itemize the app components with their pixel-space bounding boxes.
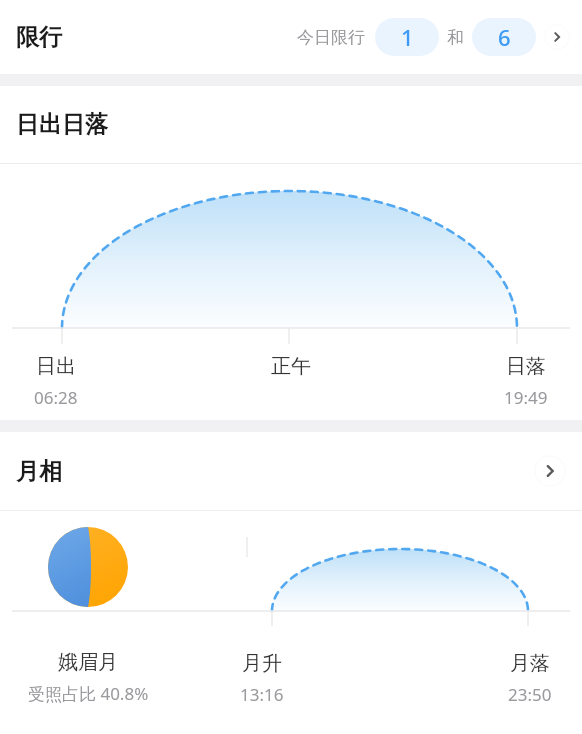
button[interactable]: 查看月相详情: [534, 455, 566, 487]
staticText: 正午: [271, 354, 311, 379]
staticText: 限行: [16, 23, 62, 52]
button[interactable]: 6: [472, 18, 536, 56]
button[interactable]: 月相: [0, 432, 582, 510]
staticText: 1: [401, 22, 414, 52]
staticText: 06:28: [34, 386, 78, 409]
button[interactable]: 展开限行详情: [544, 24, 570, 50]
button[interactable]: 今日限行: [297, 18, 570, 56]
staticText: 13:16: [240, 683, 284, 706]
staticText: 月升: [242, 651, 282, 676]
staticText: 19:49: [504, 386, 548, 409]
staticText: 23:50: [508, 683, 552, 706]
staticText: 娥眉月: [58, 650, 118, 675]
staticText: 月相: [16, 457, 62, 486]
staticText: 日出日落: [16, 110, 108, 139]
staticText: 受照占比 40.8%: [28, 682, 149, 705]
staticText: 月落: [510, 651, 550, 676]
staticText: 和: [447, 27, 464, 48]
staticText: 6: [498, 22, 511, 52]
staticText: 日落: [506, 354, 546, 379]
staticText: 日出: [36, 354, 76, 379]
button[interactable]: 1: [375, 18, 439, 56]
staticText: 今日限行: [297, 27, 365, 48]
